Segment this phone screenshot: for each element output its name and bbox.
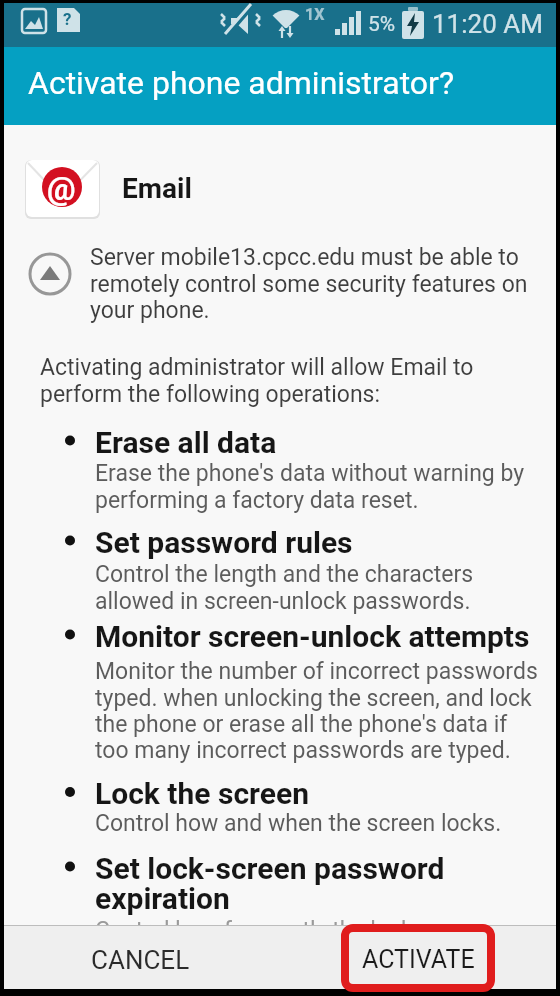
staticText: Control the length and the characters al… [95, 561, 474, 614]
staticText: 5% [368, 12, 396, 37]
staticText: 11:20 AM [432, 9, 543, 39]
staticText: Activate phone administrator? [28, 64, 455, 102]
staticText: Erase all data [95, 425, 277, 460]
staticText: Monitor the number of incorrect password… [95, 658, 538, 763]
button[interactable]: CANCEL [64, 928, 216, 991]
staticText: Set lock-screen password expiration [95, 851, 445, 916]
staticText: Control how frequently the lock [95, 917, 413, 944]
staticText: 1X [305, 5, 325, 24]
staticText: ACTIVATE [362, 945, 475, 974]
staticText: Set password rules [95, 525, 353, 560]
staticText: Monitor screen-unlock attempts [95, 619, 530, 654]
button[interactable]: ACTIVATE [345, 928, 491, 991]
staticText: Email [122, 172, 192, 205]
staticText: ? [63, 9, 72, 29]
staticText: Server mobile13.cpcc.edu must be able to… [90, 244, 528, 323]
staticText: CANCEL [91, 945, 190, 975]
staticText: @ [47, 170, 76, 208]
staticText: Erase the phone's data without warning b… [95, 460, 525, 513]
staticText: Control how and when the screen locks. [95, 810, 502, 837]
staticText: Lock the screen [95, 776, 309, 811]
staticText: Activating administrator will allow Emai… [40, 354, 474, 407]
